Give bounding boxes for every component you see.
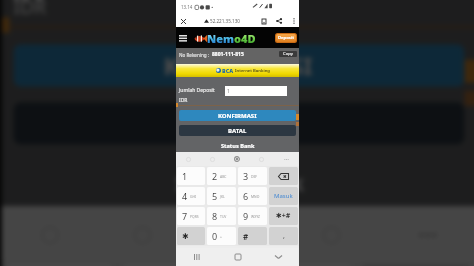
button[interactable]: 0	[207, 227, 236, 245]
button[interactable]: ,	[269, 227, 298, 245]
staticText: 6	[243, 190, 249, 202]
staticText: 7	[182, 210, 188, 222]
staticText: 1	[227, 88, 230, 95]
staticText: Jumlah Deposit	[179, 87, 215, 94]
button[interactable]: Backspace	[269, 167, 298, 185]
staticText: 8	[212, 210, 218, 222]
staticText: Deposit	[278, 35, 295, 41]
staticText: WXYZ	[251, 214, 260, 219]
button[interactable]: Emoji	[2, 206, 94, 260]
staticText: Internet Banking	[235, 68, 270, 74]
button[interactable]: #	[238, 227, 267, 245]
staticText: 0	[212, 230, 218, 242]
button[interactable]: 9	[238, 207, 267, 225]
staticText: KONFIRMASI	[164, 52, 314, 83]
button[interactable]: Share	[273, 15, 285, 27]
button[interactable]: Home	[217, 248, 258, 266]
staticText: KONFIRMASI	[218, 112, 257, 120]
staticText: TUV	[220, 214, 227, 219]
button[interactable]: 3	[238, 167, 267, 185]
staticText: JKL	[220, 194, 225, 199]
button[interactable]: 2	[121, 264, 233, 266]
staticText: 5	[212, 190, 218, 202]
button[interactable]: 5	[207, 187, 236, 205]
staticText: +	[220, 234, 222, 239]
button[interactable]: 6	[238, 187, 267, 205]
staticText: DEF	[251, 174, 258, 179]
staticText: ,	[283, 231, 285, 241]
staticText: ✱	[182, 232, 189, 241]
button[interactable]: 2	[207, 167, 236, 185]
staticText: 9	[243, 210, 249, 222]
staticText: BATAL	[202, 110, 275, 141]
button[interactable]: ✱	[177, 227, 205, 245]
staticText: BATAL	[228, 127, 247, 135]
button[interactable]: Menu	[177, 32, 189, 44]
other: Backspace	[278, 173, 289, 180]
staticText: Status Bank	[175, 168, 306, 198]
button[interactable]: KONFIRMASI	[13, 44, 464, 87]
button[interactable]: Masuk	[269, 187, 298, 205]
button[interactable]: Close	[177, 15, 189, 27]
button[interactable]: Settings	[187, 206, 283, 260]
staticText: Copy	[283, 51, 293, 57]
button[interactable]: 4	[177, 187, 205, 205]
staticText: ABC	[220, 174, 227, 179]
button[interactable]: Settings	[224, 152, 249, 166]
staticText: Nem	[207, 31, 234, 45]
staticText: Masuk	[274, 192, 293, 200]
staticText: 1	[182, 170, 188, 182]
button[interactable]: GIF	[94, 206, 187, 260]
button[interactable]: More	[274, 152, 299, 166]
staticText: ✱+#	[276, 211, 291, 221]
button[interactable]: 7	[177, 207, 205, 225]
button[interactable]: Copy	[279, 51, 297, 57]
button[interactable]: Back	[258, 248, 299, 266]
button[interactable]: ✱+#	[269, 207, 298, 225]
staticText: GHI	[190, 194, 197, 199]
staticText: o4D	[234, 31, 256, 45]
button[interactable]: More options	[288, 15, 299, 26]
button[interactable]: Deposit	[276, 34, 296, 42]
button[interactable]: Bookmark	[258, 15, 270, 27]
staticText: 2	[212, 170, 218, 182]
button[interactable]: BATAL	[13, 102, 464, 145]
staticText: #	[243, 231, 249, 242]
staticText: Status Bank	[221, 142, 255, 150]
button[interactable]: 1	[177, 167, 205, 185]
staticText: 52.221.35.130	[210, 18, 240, 24]
button[interactable]: Sticker	[283, 206, 379, 260]
staticText: No Rekening :	[179, 52, 210, 58]
staticText: 4	[182, 190, 188, 202]
staticText: BCA	[222, 67, 234, 74]
staticText: IDR	[13, 0, 48, 21]
staticText: 13.14	[181, 4, 193, 10]
button[interactable]: 8	[207, 207, 236, 225]
staticText: 8801-111-815	[212, 51, 244, 58]
staticText: 3	[243, 170, 249, 182]
button[interactable]: BATAL	[179, 125, 296, 136]
staticText: IDR	[179, 97, 188, 104]
staticText: MNO	[251, 194, 260, 199]
staticText: PQRS	[190, 214, 199, 219]
button[interactable]: 3	[241, 264, 353, 266]
button[interactable]: Recent apps	[176, 248, 217, 266]
button[interactable]: KONFIRMASI	[179, 110, 296, 121]
